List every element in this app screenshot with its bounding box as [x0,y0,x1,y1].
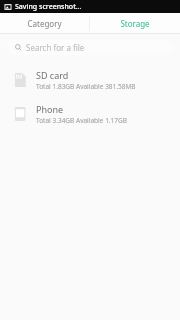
staticText: Total 1.83GB Available 381.58MB [36,82,136,91]
button[interactable]: Storage [90,13,180,34]
staticText: Search for a file [26,42,85,53]
staticText: Total 3.34GB Available 1.17GB [36,116,127,125]
staticText: Category [27,18,62,29]
button[interactable]: Phone storage [0,97,180,131]
staticText: Phone [36,103,64,115]
other: SD card [12,72,28,88]
staticText: Saving screenshot… [15,2,82,12]
button[interactable]: Category [0,13,89,34]
staticText: SD card [36,69,69,81]
button[interactable]: SD card [0,63,180,97]
button[interactable]: Search for a file [7,40,173,55]
other: Phone storage [12,106,28,122]
staticText: Storage [120,18,150,29]
